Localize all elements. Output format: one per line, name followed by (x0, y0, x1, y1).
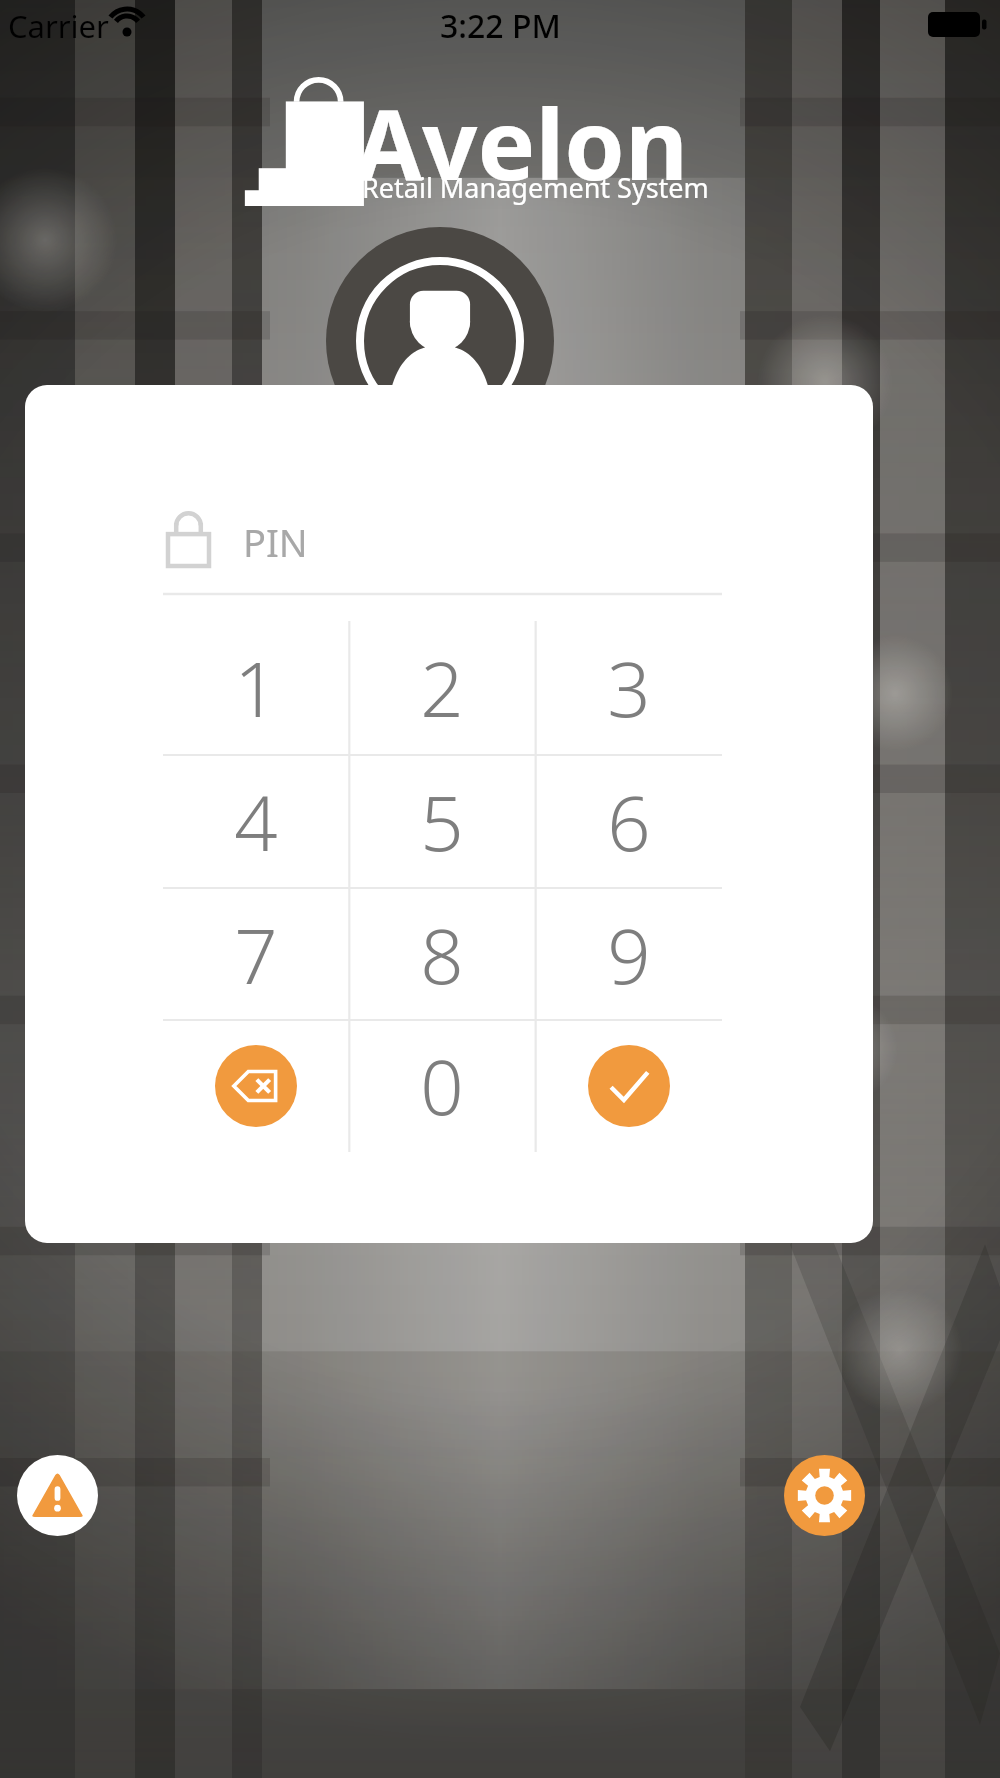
button[interactable]: 0 (349, 1020, 535, 1152)
staticText: Carrier (8, 5, 109, 47)
staticText: 3 (607, 636, 651, 740)
button[interactable]: 1 (163, 621, 349, 754)
button[interactable]: 7 (163, 888, 349, 1021)
button[interactable]: 9 (536, 888, 722, 1021)
button[interactable]: 6 (536, 755, 722, 888)
staticText: 3:22 PM (440, 4, 561, 48)
staticText: 9 (607, 903, 651, 1007)
staticText: PIN (243, 516, 308, 568)
staticText: 7 (234, 903, 278, 1007)
button[interactable]: 3 (536, 621, 722, 754)
staticText: Retail Management System (362, 169, 709, 206)
staticText: Avelon (355, 76, 689, 208)
button[interactable]: 5 (349, 755, 535, 888)
staticText: 1 (234, 636, 278, 740)
staticText: 0 (420, 1034, 464, 1138)
button[interactable]: Backspace (163, 1020, 349, 1152)
staticText: 5 (420, 770, 464, 874)
staticText: 8 (420, 903, 464, 1007)
button[interactable]: Confirm PIN (536, 1020, 722, 1152)
button[interactable]: 2 (349, 621, 535, 754)
button[interactable]: Warning (17, 1455, 98, 1536)
staticText: 6 (607, 770, 651, 874)
staticText: 2 (420, 636, 464, 740)
staticText: 4 (234, 770, 278, 874)
button[interactable]: 4 (163, 755, 349, 888)
button[interactable]: Settings (784, 1455, 865, 1536)
button[interactable]: 8 (349, 888, 535, 1021)
